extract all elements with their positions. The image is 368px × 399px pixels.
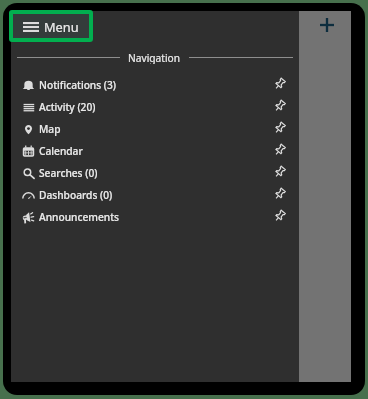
- button[interactable]: Map: [11, 118, 299, 140]
- button[interactable]: Add: [313, 11, 341, 39]
- button[interactable]: Menu: [9, 10, 93, 42]
- button[interactable]: Pin Calendar: [270, 141, 290, 161]
- button[interactable]: Pin Map: [270, 119, 290, 139]
- button[interactable]: Pin Notifications (3): [270, 75, 290, 95]
- button[interactable]: Notifications (3): [11, 74, 299, 96]
- button[interactable]: Pin Searches (0): [270, 163, 290, 183]
- button[interactable]: Announcements: [11, 206, 299, 228]
- button[interactable]: Calendar: [11, 140, 299, 162]
- button[interactable]: Pin Activity (20): [270, 97, 290, 117]
- staticText: Menu: [44, 18, 79, 35]
- button[interactable]: Dashboards (0): [11, 184, 299, 206]
- staticText: Dashboards (0): [39, 188, 113, 202]
- staticText: Navigation: [128, 51, 181, 64]
- staticText: Announcements: [39, 210, 120, 224]
- staticText: Calendar: [39, 144, 83, 158]
- staticText: Activity (20): [39, 100, 96, 114]
- button[interactable]: Searches (0): [11, 162, 299, 184]
- staticText: Notifications (3): [39, 78, 117, 92]
- staticText: Map: [39, 122, 61, 136]
- button[interactable]: Pin Dashboards (0): [270, 185, 290, 205]
- button[interactable]: Activity (20): [11, 96, 299, 118]
- button[interactable]: Pin Announcements: [270, 207, 290, 227]
- staticText: Searches (0): [39, 166, 98, 180]
